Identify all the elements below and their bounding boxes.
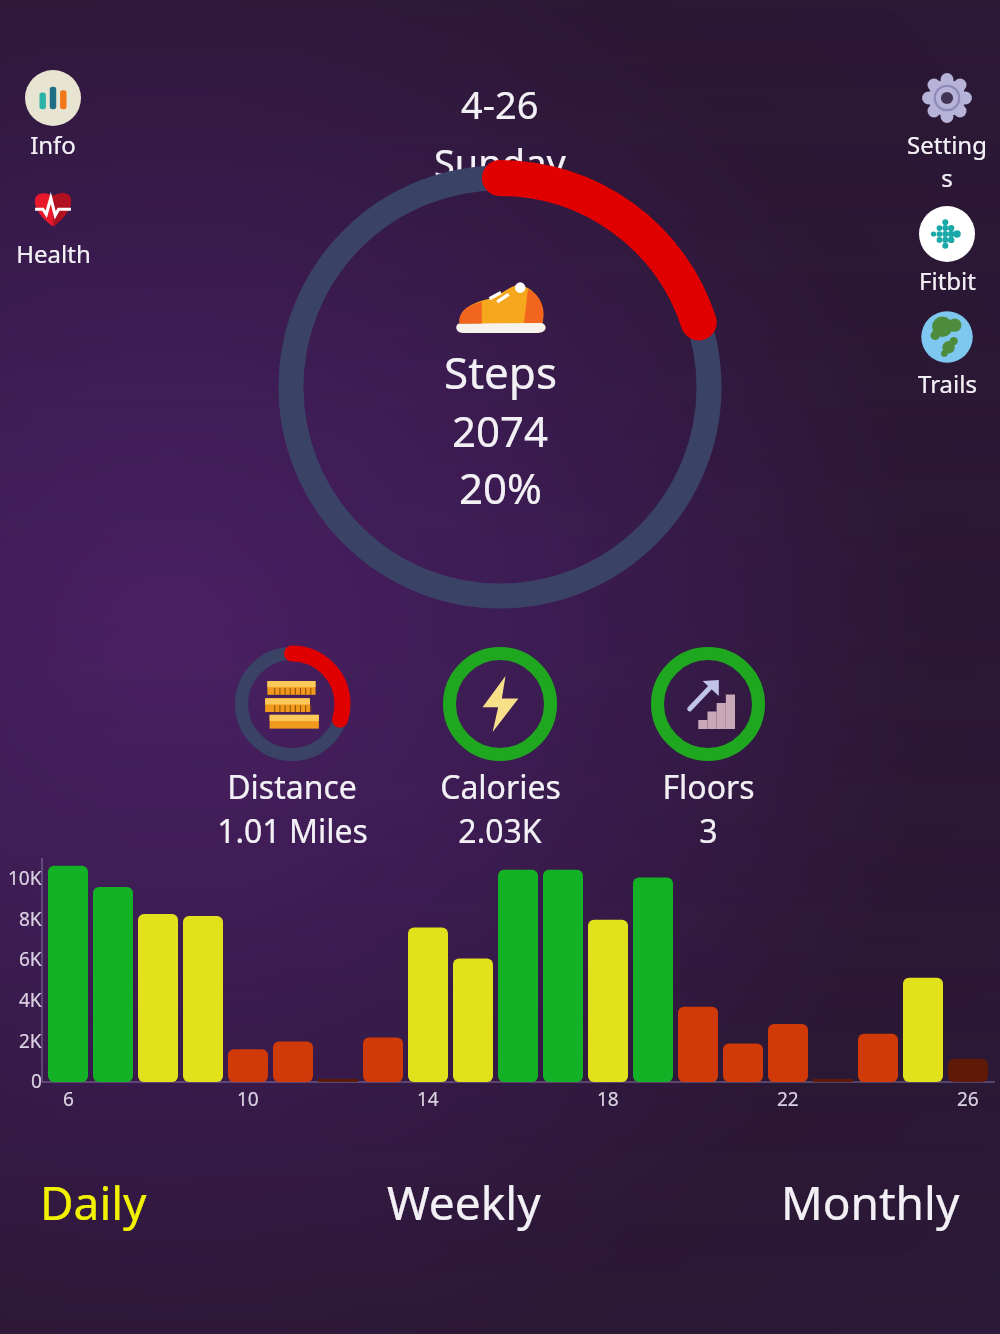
- other: Info: [25, 70, 81, 126]
- other: Settings: [919, 70, 975, 126]
- staticText: Settings: [904, 128, 990, 194]
- staticText: Weekly: [387, 1171, 541, 1234]
- button[interactable]: Floors: [598, 645, 818, 853]
- staticText: 10K: [8, 865, 42, 891]
- button[interactable]: Trails: [904, 309, 990, 400]
- staticText: 4-26: [461, 78, 539, 130]
- staticText: Health: [16, 237, 91, 270]
- other: Fitbit: [919, 206, 975, 262]
- staticText: 1.01 Miles: [217, 809, 368, 853]
- staticText: 2K: [19, 1028, 42, 1054]
- staticText: 3: [699, 809, 718, 853]
- staticText: 14: [417, 1086, 439, 1112]
- staticText: 2074: [452, 402, 549, 459]
- staticText: 20%: [459, 459, 542, 516]
- staticText: Calories: [440, 765, 561, 809]
- staticText: Trails: [918, 367, 977, 400]
- staticText: Distance: [227, 765, 357, 809]
- button[interactable]: Health: [10, 179, 96, 270]
- staticText: 26: [957, 1086, 979, 1112]
- button[interactable]: Daily: [26, 1165, 161, 1240]
- staticText: Sunday: [434, 136, 566, 188]
- other: Trails: [919, 309, 975, 365]
- staticText: Daily: [40, 1171, 147, 1234]
- button[interactable]: Fitbit: [904, 206, 990, 297]
- staticText: 4K: [19, 987, 42, 1013]
- button[interactable]: Weekly: [373, 1165, 555, 1240]
- other: Health: [25, 179, 81, 235]
- button[interactable]: Info: [10, 70, 96, 161]
- staticText: Floors: [662, 765, 755, 809]
- button[interactable]: Steps goal: [273, 160, 727, 614]
- staticText: 8K: [19, 906, 42, 932]
- button[interactable]: Distance: [182, 645, 402, 853]
- staticText: Steps: [444, 342, 557, 402]
- staticText: 6K: [19, 946, 42, 972]
- staticText: Monthly: [781, 1171, 960, 1234]
- staticText: 22: [777, 1086, 799, 1112]
- staticText: 2.03K: [458, 809, 542, 853]
- staticText: Fitbit: [919, 264, 976, 297]
- button[interactable]: Monthly: [767, 1165, 974, 1240]
- button[interactable]: Calories: [390, 645, 610, 853]
- button[interactable]: Settings: [904, 70, 990, 194]
- staticText: 6: [63, 1086, 74, 1112]
- staticText: 10: [237, 1086, 259, 1112]
- staticText: Info: [30, 128, 76, 161]
- staticText: 18: [597, 1086, 619, 1112]
- staticText: 0: [31, 1068, 42, 1094]
